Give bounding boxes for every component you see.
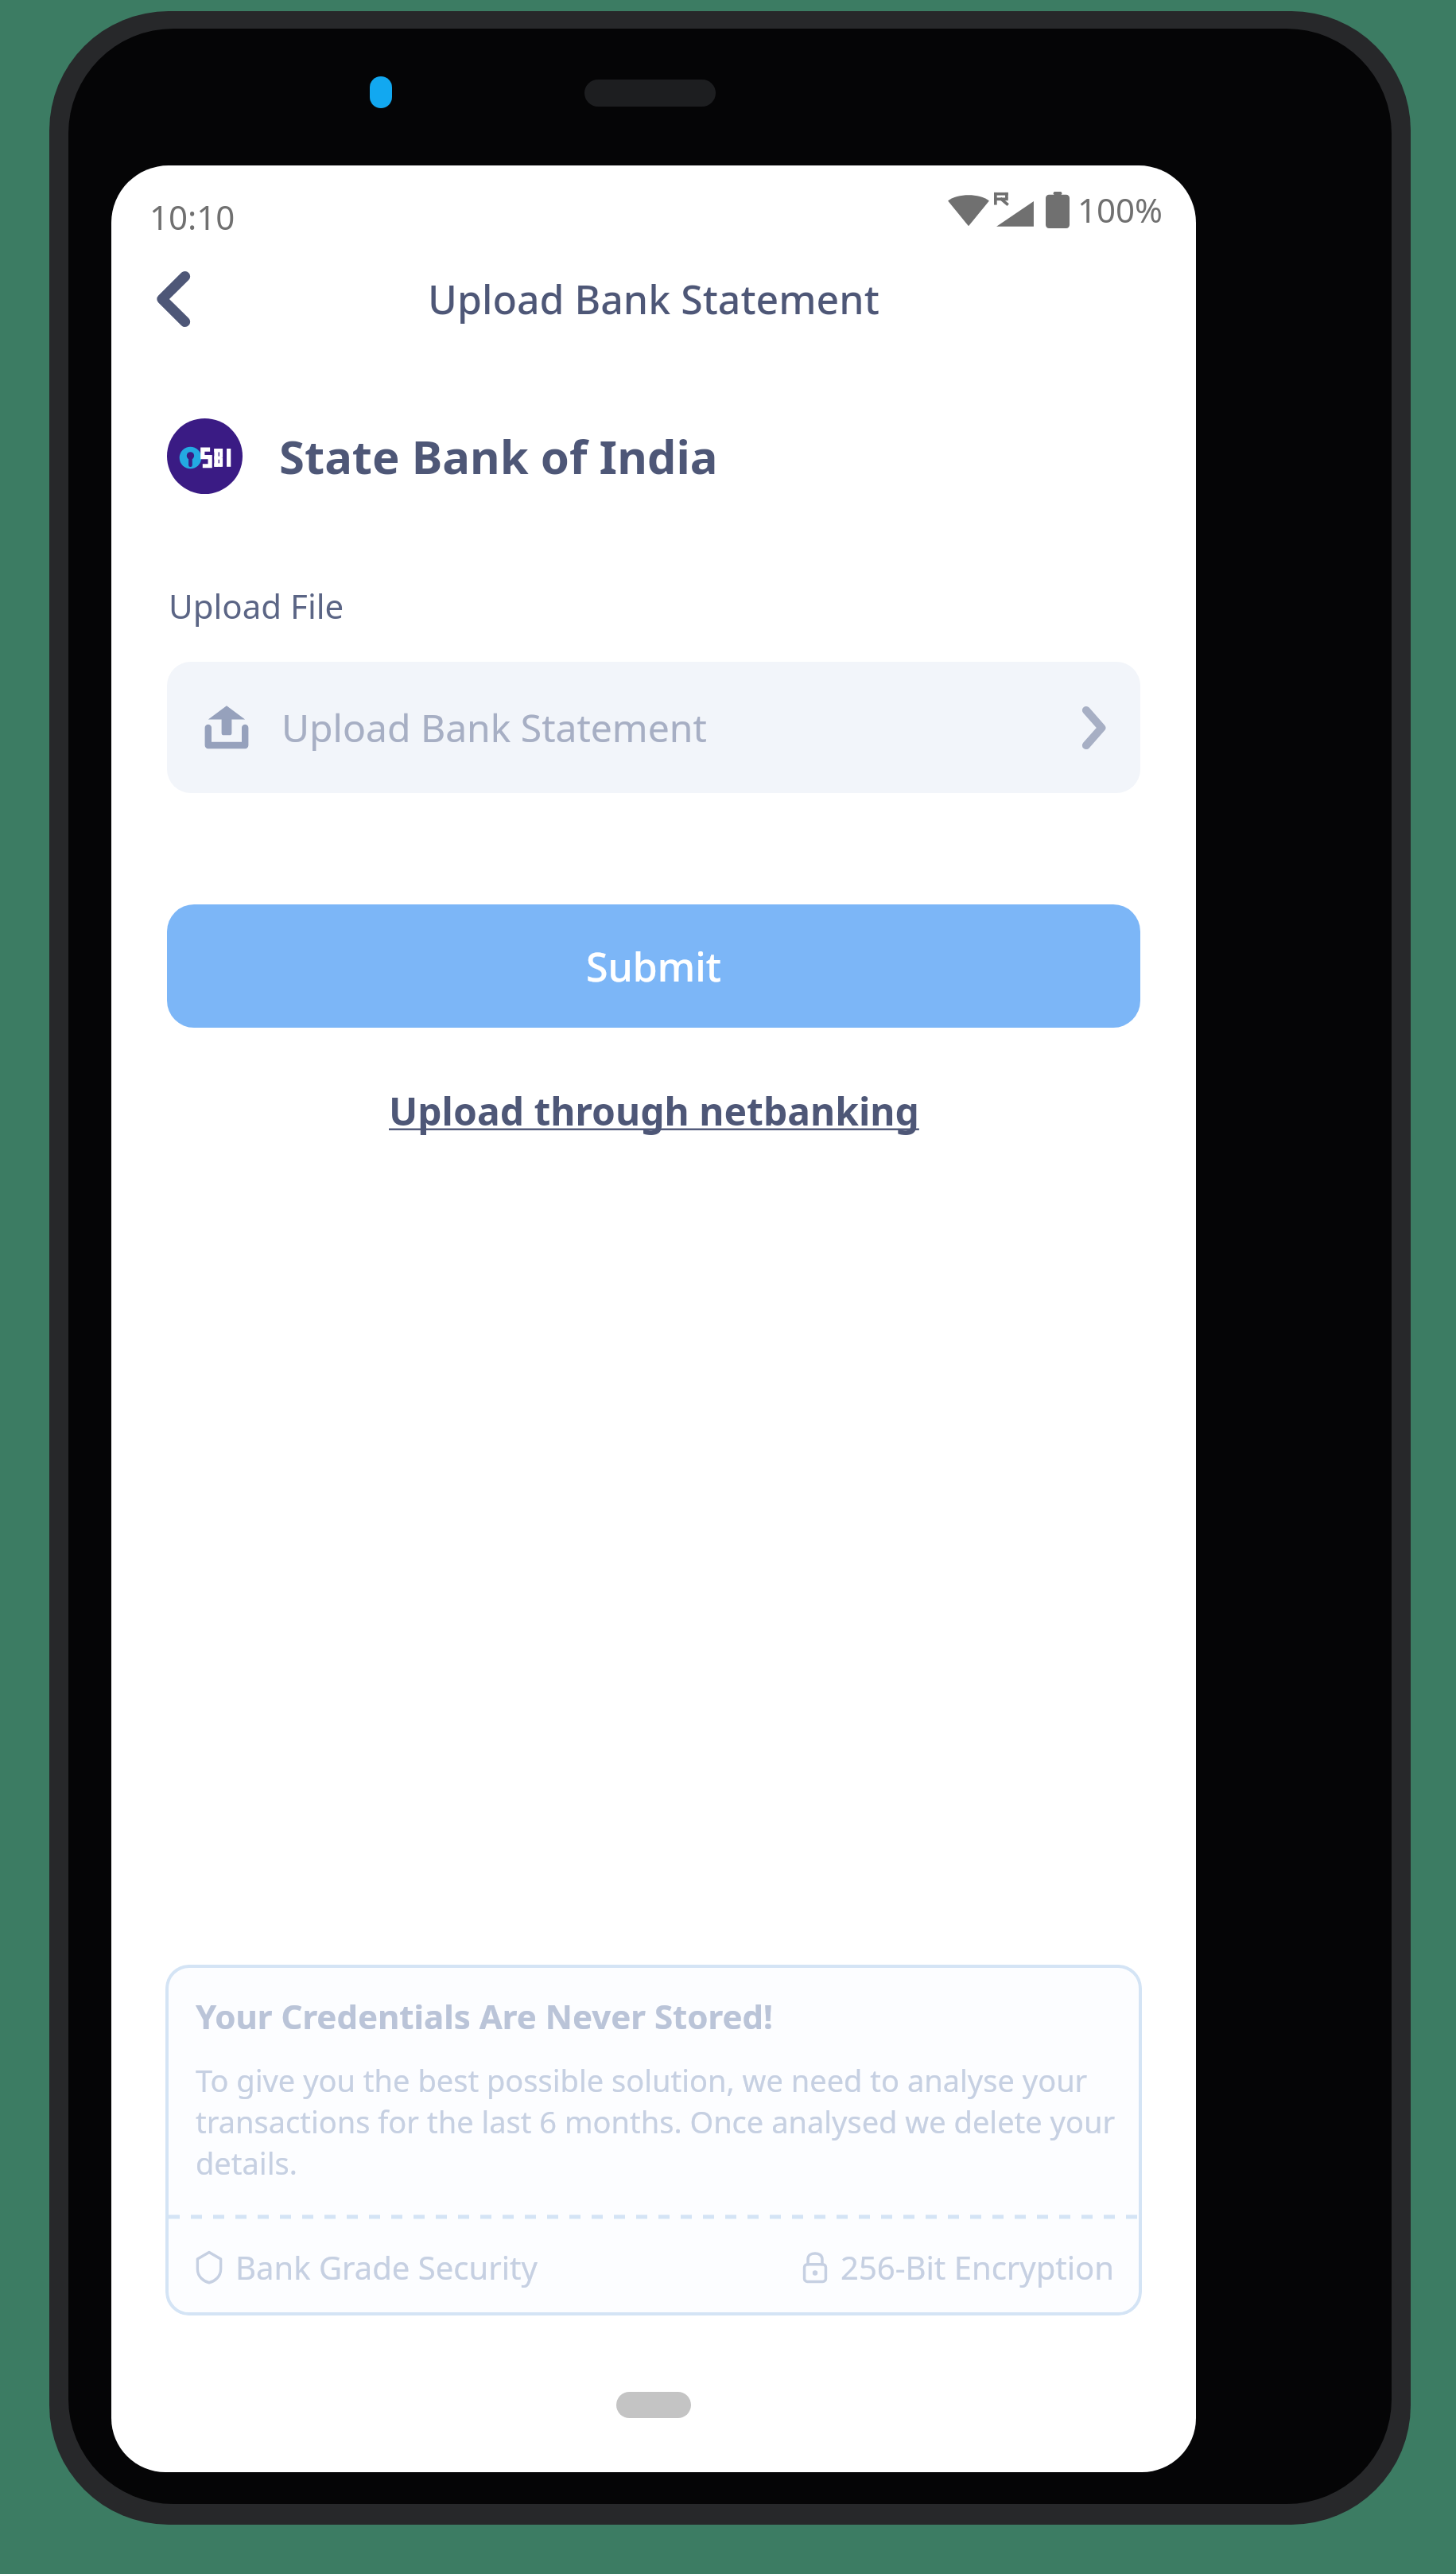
staticText: State Bank of India: [279, 425, 718, 488]
staticText: Upload Bank Statement: [281, 702, 1083, 753]
staticText: Upload Bank Statement: [428, 272, 879, 326]
staticText: Upload through netbanking: [389, 1085, 919, 1137]
button[interactable]: Upload Bank Statement: [167, 662, 1140, 793]
staticText: 256-Bit Encryption: [841, 2245, 1115, 2288]
staticText: Bank Grade Security: [235, 2245, 538, 2288]
staticText: 10:10: [149, 194, 235, 239]
button[interactable]: Back: [130, 255, 218, 343]
staticText: Upload File: [169, 583, 344, 628]
staticText: Submit: [586, 939, 721, 993]
button[interactable]: Upload through netbanking: [368, 1074, 940, 1148]
staticText: Your Credentials Are Never Stored!: [196, 1993, 773, 2039]
button[interactable]: Submit: [167, 904, 1140, 1028]
staticText: 100%: [1077, 187, 1163, 232]
staticText: To give you the best possible solution, …: [196, 2059, 1118, 2183]
